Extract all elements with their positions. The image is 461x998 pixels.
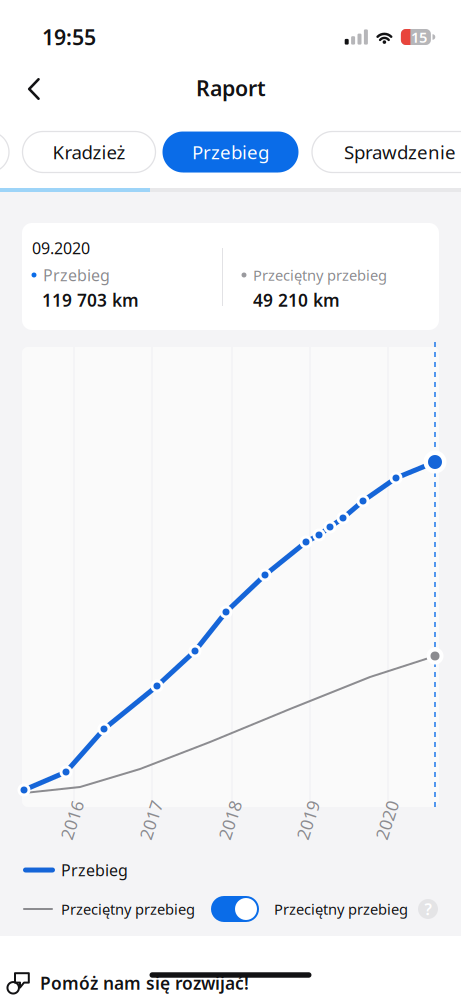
- staticText: Przeciętny przebieg: [253, 265, 387, 285]
- staticText: 49 210 km: [253, 288, 340, 311]
- staticText: 19:55: [42, 23, 96, 51]
- staticText: Przeciętny przebieg: [274, 899, 408, 919]
- staticText: Pomóż nam się rozwijać!: [40, 971, 249, 994]
- staticText: 119 703 km: [42, 288, 139, 311]
- staticText: Sprawdzenie s: [344, 140, 461, 164]
- staticText: 2016: [52, 808, 92, 831]
- button[interactable]: Help: [415, 896, 441, 922]
- button[interactable]: Kradzież: [22, 131, 155, 172]
- staticText: Przebieg: [192, 140, 269, 164]
- staticText: Przebieg: [43, 264, 110, 286]
- staticText: 15: [411, 27, 427, 47]
- staticText: ?: [424, 898, 431, 920]
- staticText: Przeciętny przebieg: [61, 899, 195, 919]
- staticText: 09.2020: [32, 237, 90, 259]
- staticText: Raport: [196, 74, 266, 102]
- button[interactable]: Back: [10, 65, 58, 113]
- staticText: Przebieg: [61, 859, 128, 881]
- staticText: 2019: [288, 808, 328, 831]
- button[interactable]: Sprawdzenie s: [312, 131, 461, 172]
- staticText: 2017: [131, 808, 171, 831]
- staticText: 2018: [210, 808, 250, 831]
- button[interactable]: Przebieg: [162, 131, 298, 172]
- button[interactable]: Pomóż nam się rozwijać!: [3, 971, 253, 994]
- button[interactable]: Toggle average mileage: [211, 896, 259, 922]
- staticText: 2020: [367, 808, 407, 831]
- staticText: Kradzież: [52, 140, 125, 164]
